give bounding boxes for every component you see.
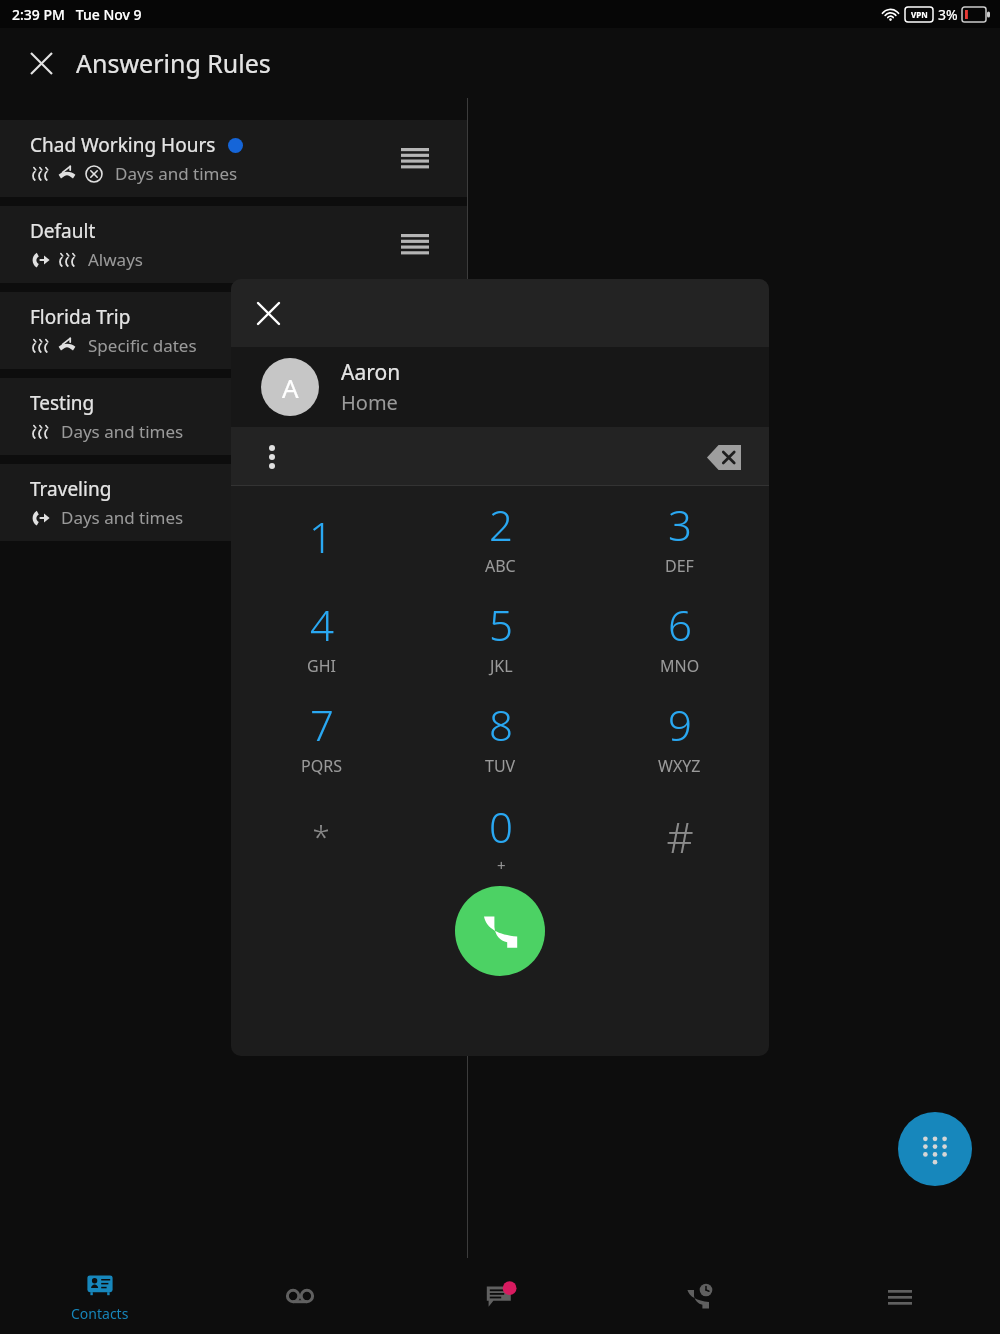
staticText: 2 bbox=[489, 496, 513, 553]
button[interactable]: Recents bbox=[600, 1258, 800, 1334]
button[interactable]: # bbox=[590, 786, 769, 886]
button[interactable]: Reorder rule bbox=[393, 223, 437, 267]
staticText: TUV bbox=[485, 755, 516, 777]
button[interactable]: * bbox=[231, 786, 411, 886]
button[interactable]: Voicemail bbox=[200, 1258, 400, 1334]
staticText: Florida Trip bbox=[30, 304, 131, 330]
button[interactable]: Traveling bbox=[0, 464, 467, 541]
button[interactable]: 3 bbox=[590, 486, 769, 586]
staticText: 9 bbox=[668, 696, 692, 753]
staticText: Contacts bbox=[71, 1304, 129, 1323]
staticText: + bbox=[497, 855, 506, 875]
staticText: Home bbox=[341, 389, 398, 416]
staticText: * bbox=[312, 814, 330, 858]
staticText: 3% bbox=[938, 5, 958, 24]
staticText: Days and times bbox=[115, 162, 238, 185]
button[interactable]: Call bbox=[455, 886, 545, 976]
staticText: 2:39 PM Tue Nov 9 bbox=[12, 5, 142, 24]
button[interactable]: Backspace bbox=[701, 434, 747, 480]
staticText: 0 bbox=[489, 798, 513, 855]
staticText: Specific dates bbox=[88, 334, 197, 357]
staticText: JKL bbox=[490, 655, 513, 677]
button[interactable]: Close bbox=[18, 40, 64, 86]
button[interactable]: 5 bbox=[411, 586, 590, 686]
button[interactable]: Close dialer bbox=[245, 290, 291, 336]
button[interactable]: 6 bbox=[590, 586, 769, 686]
staticText: PQRS bbox=[301, 755, 342, 777]
staticText: GHI bbox=[307, 655, 336, 677]
staticText: Aaron bbox=[341, 358, 401, 387]
button[interactable]: Contacts bbox=[0, 1258, 200, 1334]
button[interactable]: 0 bbox=[411, 786, 590, 886]
staticText: 8 bbox=[489, 696, 513, 753]
staticText: 6 bbox=[668, 596, 692, 653]
staticText: A bbox=[282, 370, 299, 405]
button[interactable]: Messages bbox=[400, 1258, 600, 1334]
staticText: Answering Rules bbox=[76, 46, 271, 80]
button[interactable]: Chad Working Hours bbox=[0, 120, 467, 197]
staticText: WXYZ bbox=[658, 755, 701, 777]
button[interactable]: More bbox=[800, 1258, 1000, 1334]
button[interactable]: 1 bbox=[231, 486, 411, 586]
staticText: 3 bbox=[668, 496, 692, 553]
staticText: Days and times bbox=[61, 506, 184, 529]
button[interactable]: 7 bbox=[231, 686, 411, 786]
staticText: Traveling bbox=[30, 476, 112, 502]
button[interactable]: Reorder rule bbox=[393, 137, 437, 181]
staticText: # bbox=[666, 808, 694, 865]
staticText: Always bbox=[88, 248, 143, 271]
button[interactable]: A bbox=[231, 347, 769, 427]
button[interactable]: More options bbox=[251, 436, 293, 478]
staticText: DEF bbox=[665, 555, 694, 577]
staticText: ABC bbox=[485, 555, 516, 577]
staticText: Default bbox=[30, 218, 96, 244]
staticText: 4 bbox=[310, 596, 334, 653]
button[interactable]: 2 bbox=[411, 486, 590, 586]
staticText: VPN bbox=[911, 9, 928, 20]
staticText: 7 bbox=[310, 696, 334, 753]
staticText: 5 bbox=[489, 596, 513, 653]
staticText: 1 bbox=[309, 508, 333, 565]
button[interactable]: Florida Trip bbox=[0, 292, 467, 369]
button[interactable]: Default bbox=[0, 206, 467, 283]
staticText: Testing bbox=[30, 390, 95, 416]
staticText: Chad Working Hours bbox=[30, 132, 216, 158]
button[interactable]: 8 bbox=[411, 686, 590, 786]
button[interactable]: Testing bbox=[0, 378, 467, 455]
button[interactable]: 9 bbox=[590, 686, 769, 786]
staticText: Days and times bbox=[61, 420, 184, 443]
button[interactable]: Open dialpad bbox=[898, 1112, 972, 1186]
button[interactable]: 4 bbox=[231, 586, 411, 686]
staticText: MNO bbox=[660, 655, 700, 677]
